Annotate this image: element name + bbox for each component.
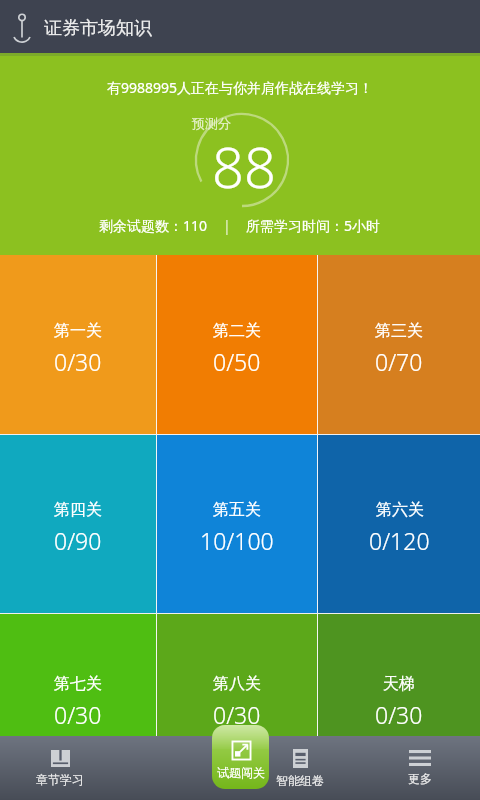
- staticText: 0/120: [369, 525, 430, 556]
- staticText: 0/30: [54, 346, 102, 377]
- staticText: 第六关: [376, 500, 424, 520]
- staticText: 更多: [408, 771, 432, 786]
- button[interactable]: 第七关: [0, 614, 156, 736]
- staticText: 0/50: [213, 346, 261, 377]
- staticText: 第一关: [54, 321, 102, 341]
- button[interactable]: 第八关: [157, 614, 317, 736]
- staticText: 第七关: [54, 674, 102, 694]
- staticText: 第八关: [213, 674, 261, 694]
- staticText: 所需学习时间：5小时: [246, 216, 381, 235]
- staticText: 天梯: [383, 674, 415, 694]
- staticText: 10/100: [200, 525, 274, 556]
- staticText: 有9988995人正在与你并肩作战在线学习！: [107, 78, 374, 97]
- button[interactable]: 第六关: [318, 435, 480, 613]
- button[interactable]: 天梯: [318, 614, 480, 736]
- button[interactable]: 第四关: [0, 435, 156, 613]
- other: 更多: [409, 750, 431, 766]
- staticText: 第二关: [213, 321, 261, 341]
- staticText: |: [223, 216, 231, 235]
- staticText: 预测分: [192, 115, 231, 131]
- button[interactable]: 章节学习: [0, 736, 120, 800]
- button[interactable]: 第三关: [318, 255, 480, 434]
- staticText: 0/30: [54, 699, 102, 730]
- staticText: 第五关: [213, 500, 261, 520]
- staticText: 0/30: [375, 699, 423, 730]
- button[interactable]: 第五关: [157, 435, 317, 613]
- staticText: 章节学习: [36, 772, 84, 787]
- staticText: 0/70: [375, 346, 423, 377]
- staticText: 试题闯关: [217, 765, 265, 780]
- button[interactable]: 第一关: [0, 255, 156, 434]
- staticText: 88: [212, 128, 276, 204]
- staticText: 证券市场知识: [44, 17, 152, 40]
- button[interactable]: 智能组卷: [240, 736, 360, 800]
- staticText: 剩余试题数：110: [99, 216, 208, 235]
- staticText: 第四关: [54, 500, 102, 520]
- staticText: 0/30: [213, 699, 261, 730]
- other: 章节学习: [51, 750, 70, 767]
- staticText: 0/90: [54, 525, 102, 556]
- button[interactable]: 试题闯关: [212, 725, 269, 789]
- other: 智能组卷: [293, 749, 308, 768]
- staticText: 第三关: [375, 321, 423, 341]
- button[interactable]: 更多: [360, 736, 480, 800]
- staticText: 智能组卷: [276, 773, 324, 788]
- button[interactable]: 第二关: [157, 255, 317, 434]
